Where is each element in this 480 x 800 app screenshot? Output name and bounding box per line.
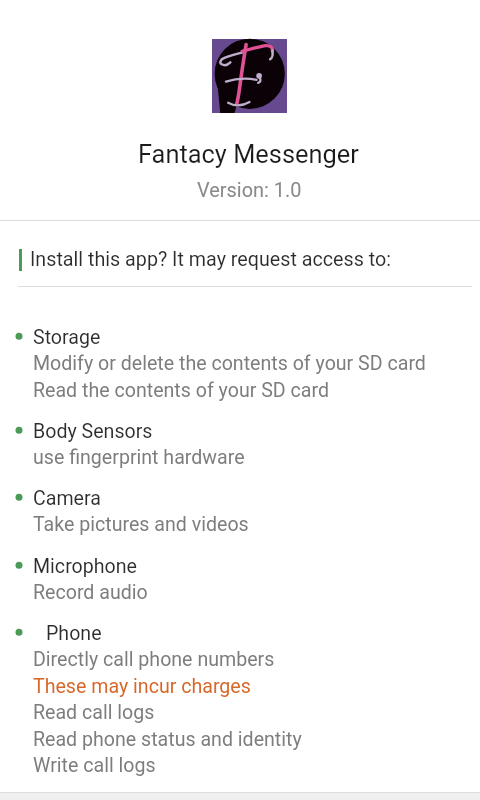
button[interactable] bbox=[0, 792, 480, 800]
staticText: Read phone status and identity bbox=[33, 728, 302, 751]
staticText: Camera bbox=[33, 487, 101, 510]
staticText: Record audio bbox=[33, 581, 148, 604]
staticText: Modify or delete the contents of your SD… bbox=[33, 352, 426, 375]
staticText: Install this app? It may request access … bbox=[30, 248, 391, 271]
staticText: These may incur charges bbox=[33, 675, 251, 698]
button[interactable]: Storage bbox=[0, 324, 480, 403]
staticText: Phone bbox=[46, 622, 102, 645]
button[interactable]: Microphone bbox=[0, 553, 480, 606]
staticText: Version: 1.0 bbox=[197, 179, 302, 202]
button[interactable]: Phone bbox=[0, 620, 480, 779]
staticText: Take pictures and videos bbox=[33, 513, 249, 536]
staticText: Fantacy Messenger bbox=[138, 139, 359, 169]
staticText: Storage bbox=[33, 326, 101, 349]
other: Fantacy Messenger app icon bbox=[212, 39, 287, 113]
staticText: Read the contents of your SD card bbox=[33, 379, 329, 402]
staticText: Directly call phone numbers bbox=[33, 648, 275, 671]
button[interactable]: Camera bbox=[0, 485, 480, 538]
staticText: Write call logs bbox=[33, 754, 156, 777]
button[interactable]: Body Sensors bbox=[0, 418, 480, 471]
staticText: Body Sensors bbox=[33, 420, 153, 443]
staticText: Microphone bbox=[33, 555, 137, 578]
staticText: Read call logs bbox=[33, 701, 155, 724]
staticText: use fingerprint hardware bbox=[33, 446, 245, 469]
